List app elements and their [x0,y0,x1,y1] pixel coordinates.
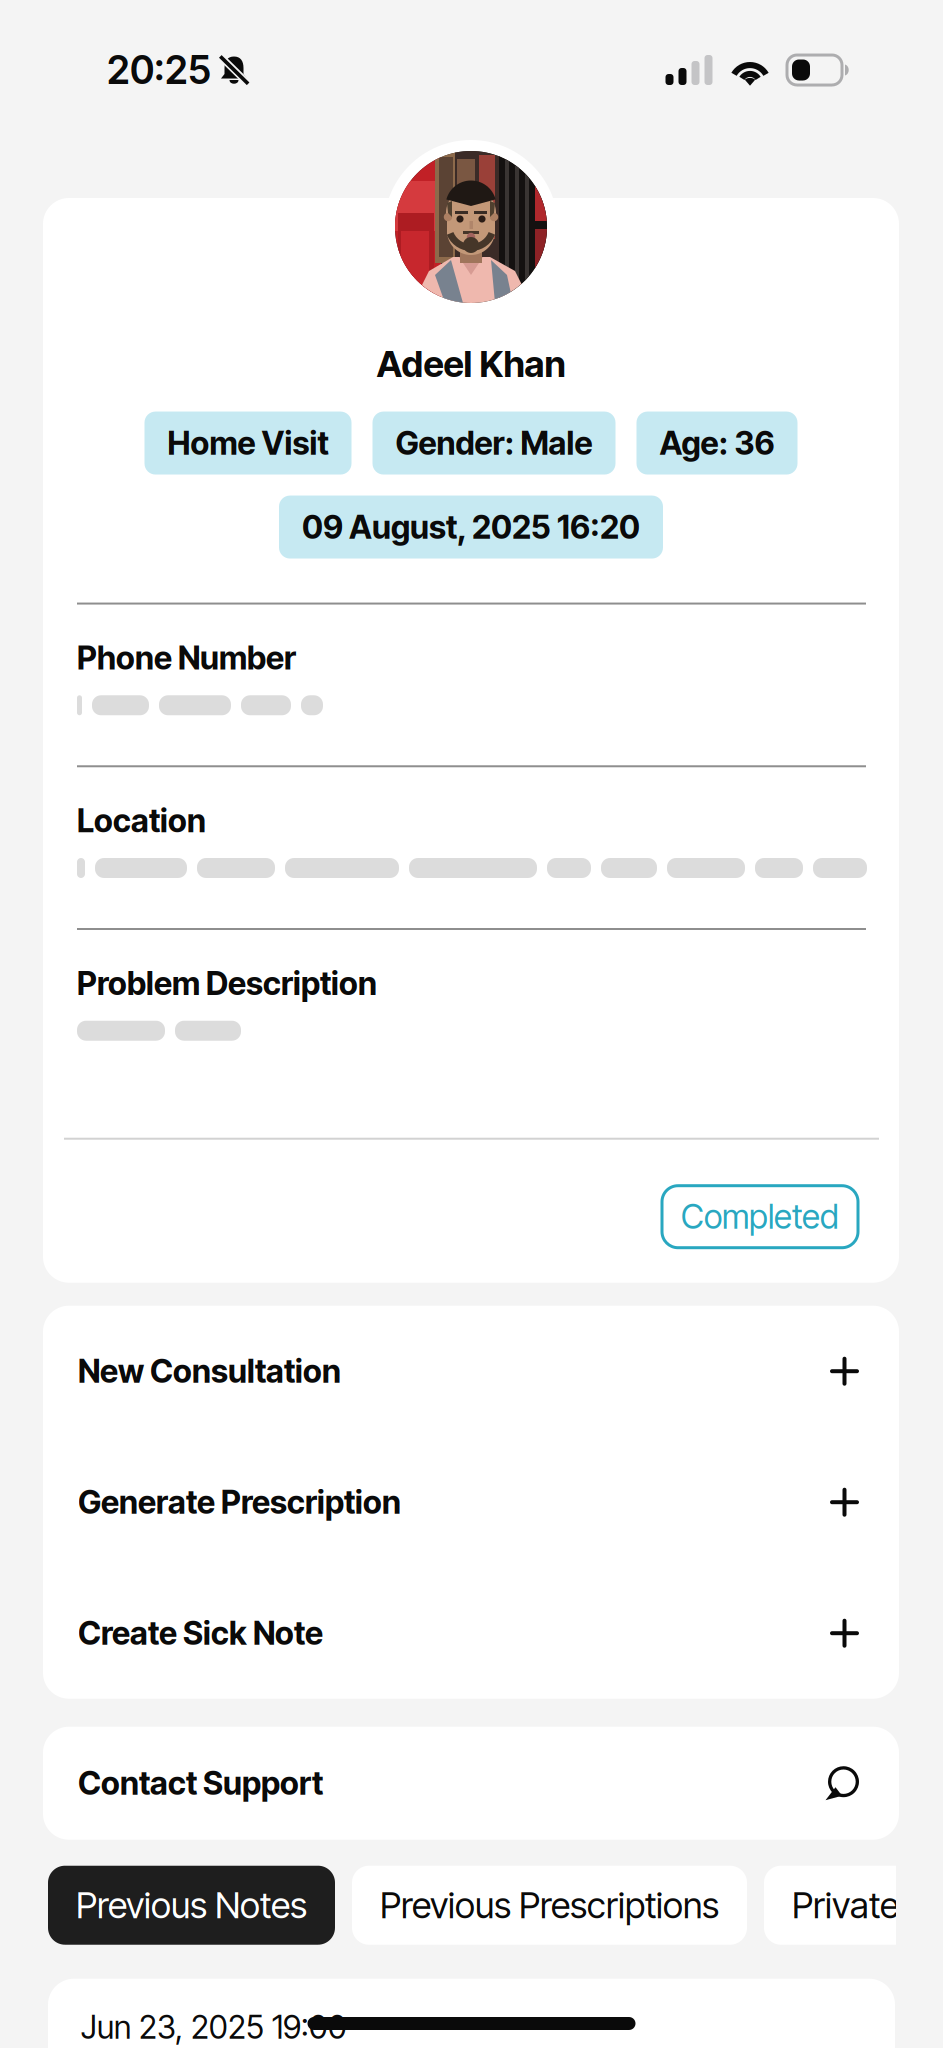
staticText: Phone Number [77,639,296,677]
staticText: Generate Prescription [78,1483,401,1522]
staticText: 20:25 [107,47,211,93]
button[interactable]: Create Sick Note [43,1568,899,1699]
button[interactable]: Contact Support [43,1727,899,1840]
button[interactable]: Completed [662,1186,858,1248]
staticText: Gender: Male [395,424,592,462]
staticText: Problem Description [77,964,377,1003]
button[interactable]: Previous Notes [48,1866,335,1945]
staticText: Create Sick Note [78,1614,323,1653]
staticText: Previous Notes [76,1883,307,1927]
button[interactable]: Previous Prescriptions [352,1866,747,1945]
staticText: Contact Support [78,1764,323,1803]
staticText: Private [792,1883,899,1927]
staticText: New Consultation [78,1352,341,1391]
button[interactable]: Generate Prescription [43,1437,899,1568]
staticText: Age: 36 [659,424,774,462]
staticText: Adeel Khan [376,342,565,386]
button[interactable]: New Consultation [43,1306,899,1437]
staticText: Location [77,801,206,840]
staticText: Home Visit [167,424,328,462]
button[interactable]: Private [764,1866,927,1945]
staticText: Previous Prescriptions [380,1883,719,1927]
staticText: Jun 23, 2025 19:00 [81,2008,347,2046]
staticText: 09 August, 2025 16:20 [302,508,640,546]
staticText: Completed [681,1196,839,1237]
